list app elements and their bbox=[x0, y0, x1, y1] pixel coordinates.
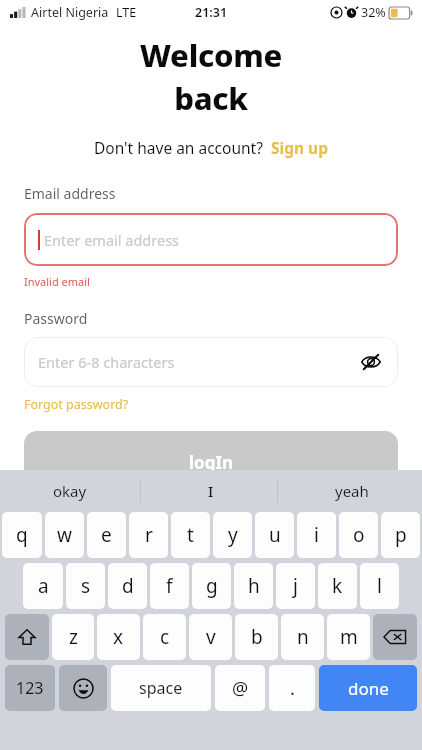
button[interactable]: g bbox=[192, 563, 231, 609]
staticText: 21:31 bbox=[195, 4, 228, 21]
button[interactable]: d bbox=[108, 563, 147, 609]
staticText: i bbox=[314, 522, 319, 548]
button[interactable]: yeah bbox=[281, 470, 422, 512]
staticText: u bbox=[269, 522, 281, 548]
staticText: g bbox=[206, 573, 218, 599]
button[interactable]: done bbox=[319, 665, 417, 711]
button[interactable]: Enter 6-8 characters bbox=[24, 337, 398, 387]
staticText: LTE bbox=[116, 4, 137, 21]
button[interactable]: Backspace bbox=[373, 614, 417, 660]
button[interactable]: f bbox=[150, 563, 189, 609]
button[interactable]: i bbox=[297, 512, 336, 558]
staticText: v bbox=[206, 624, 216, 650]
staticText: n bbox=[297, 624, 309, 650]
staticText: @ bbox=[232, 676, 249, 701]
staticText: Sign up bbox=[271, 137, 328, 158]
button[interactable]: w bbox=[45, 512, 84, 558]
staticText: f bbox=[166, 573, 173, 599]
button[interactable]: . bbox=[269, 665, 315, 711]
staticText: Password bbox=[24, 309, 88, 328]
staticText: Forgot password? bbox=[24, 396, 129, 413]
staticText: k bbox=[332, 573, 343, 599]
button[interactable]: 123 bbox=[5, 665, 55, 711]
button[interactable]: z bbox=[52, 614, 94, 660]
button[interactable]: e bbox=[87, 512, 126, 558]
button[interactable]: h bbox=[234, 563, 273, 609]
button[interactable]: l bbox=[360, 563, 399, 609]
button[interactable]: q bbox=[2, 512, 42, 558]
staticText: I bbox=[208, 481, 214, 501]
button[interactable]: space bbox=[111, 665, 211, 711]
button[interactable]: x bbox=[97, 614, 140, 660]
staticText: p bbox=[395, 522, 407, 548]
button[interactable]: m bbox=[327, 614, 370, 660]
staticText: space bbox=[139, 677, 183, 699]
button[interactable]: j bbox=[276, 563, 315, 609]
staticText: c bbox=[160, 624, 170, 650]
button[interactable]: s bbox=[66, 563, 105, 609]
staticText: Enter 6-8 characters bbox=[38, 352, 356, 372]
button[interactable]: okay bbox=[0, 470, 140, 512]
staticText: okay bbox=[53, 481, 87, 501]
button[interactable]: a bbox=[23, 563, 63, 609]
staticText: z bbox=[69, 624, 78, 650]
button[interactable]: t bbox=[171, 512, 210, 558]
staticText: done bbox=[348, 677, 389, 700]
button[interactable]: Shift bbox=[5, 614, 49, 660]
staticText: t bbox=[187, 522, 194, 548]
button[interactable]: u bbox=[255, 512, 294, 558]
button[interactable]: I bbox=[140, 470, 281, 512]
staticText: logIn bbox=[189, 451, 234, 474]
staticText: . bbox=[290, 676, 295, 701]
button[interactable]: p bbox=[381, 512, 420, 558]
staticText: x bbox=[113, 624, 124, 650]
staticText: j bbox=[293, 573, 298, 599]
staticText: 123 bbox=[16, 677, 44, 699]
staticText: e bbox=[101, 522, 112, 548]
button[interactable]: v bbox=[189, 614, 232, 660]
button[interactable]: Enter email address bbox=[24, 213, 398, 266]
button[interactable]: n bbox=[281, 614, 324, 660]
button[interactable]: c bbox=[143, 614, 186, 660]
staticText: Enter email address bbox=[44, 230, 180, 250]
button[interactable]: logIn bbox=[24, 431, 398, 493]
staticText: m bbox=[340, 624, 358, 650]
staticText: Email address bbox=[24, 184, 116, 203]
staticText: y bbox=[228, 522, 238, 548]
button[interactable]: o bbox=[339, 512, 378, 558]
staticText: h bbox=[248, 573, 260, 599]
staticText: l bbox=[377, 573, 382, 599]
staticText: s bbox=[81, 573, 91, 599]
staticText: Invalid email bbox=[24, 274, 90, 289]
staticText: Airtel Nigeria bbox=[31, 4, 109, 21]
button[interactable]: Show password bbox=[356, 347, 386, 377]
staticText: w bbox=[57, 522, 72, 548]
staticText: 32% bbox=[361, 4, 386, 21]
staticText: q bbox=[16, 522, 28, 548]
button[interactable]: Forgot password? bbox=[24, 396, 129, 413]
staticText: back bbox=[174, 77, 248, 119]
button[interactable]: Emoji bbox=[59, 665, 107, 711]
button[interactable]: @ bbox=[215, 665, 265, 711]
staticText: yeah bbox=[335, 481, 369, 501]
button[interactable]: k bbox=[318, 563, 357, 609]
staticText: Welcome bbox=[140, 34, 282, 76]
staticText: Don't have an account? bbox=[94, 137, 263, 158]
staticText: d bbox=[122, 573, 134, 599]
button[interactable]: r bbox=[129, 512, 168, 558]
staticText: o bbox=[353, 522, 365, 548]
button[interactable]: Sign up bbox=[271, 137, 328, 158]
staticText: a bbox=[38, 573, 49, 599]
button[interactable]: y bbox=[213, 512, 252, 558]
button[interactable]: b bbox=[235, 614, 278, 660]
staticText: b bbox=[251, 624, 263, 650]
staticText: r bbox=[145, 522, 153, 548]
